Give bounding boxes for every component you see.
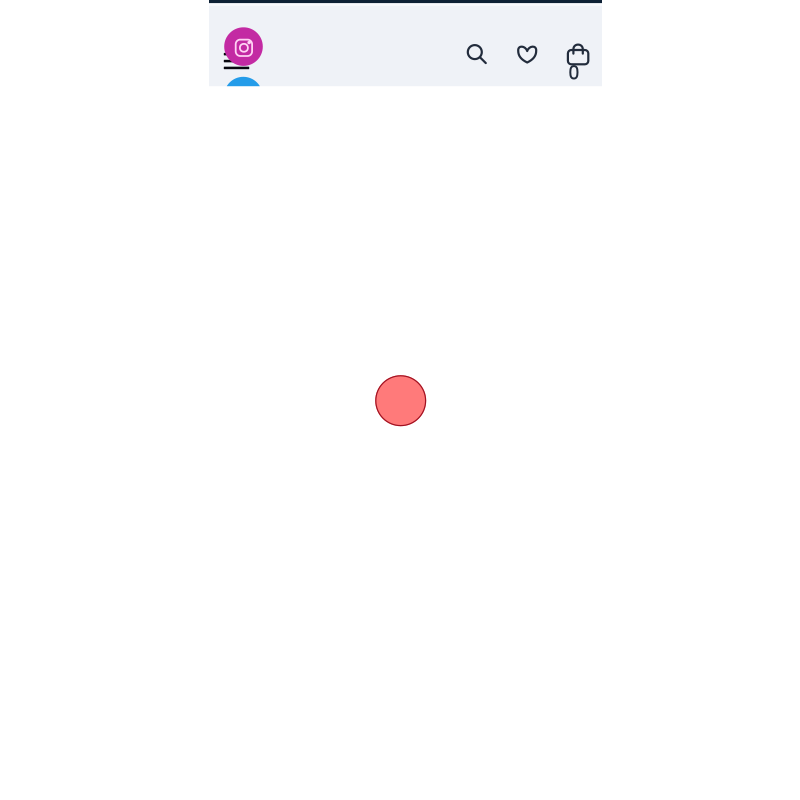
button[interactable]: Twitter bbox=[224, 77, 263, 115]
button[interactable]: Menu bbox=[224, 53, 266, 91]
button[interactable]: Search bbox=[466, 43, 490, 67]
button[interactable]: Cart, 0 items bbox=[564, 43, 594, 81]
button[interactable]: Wishlist bbox=[515, 42, 539, 66]
button[interactable]: Instagram bbox=[224, 27, 263, 66]
